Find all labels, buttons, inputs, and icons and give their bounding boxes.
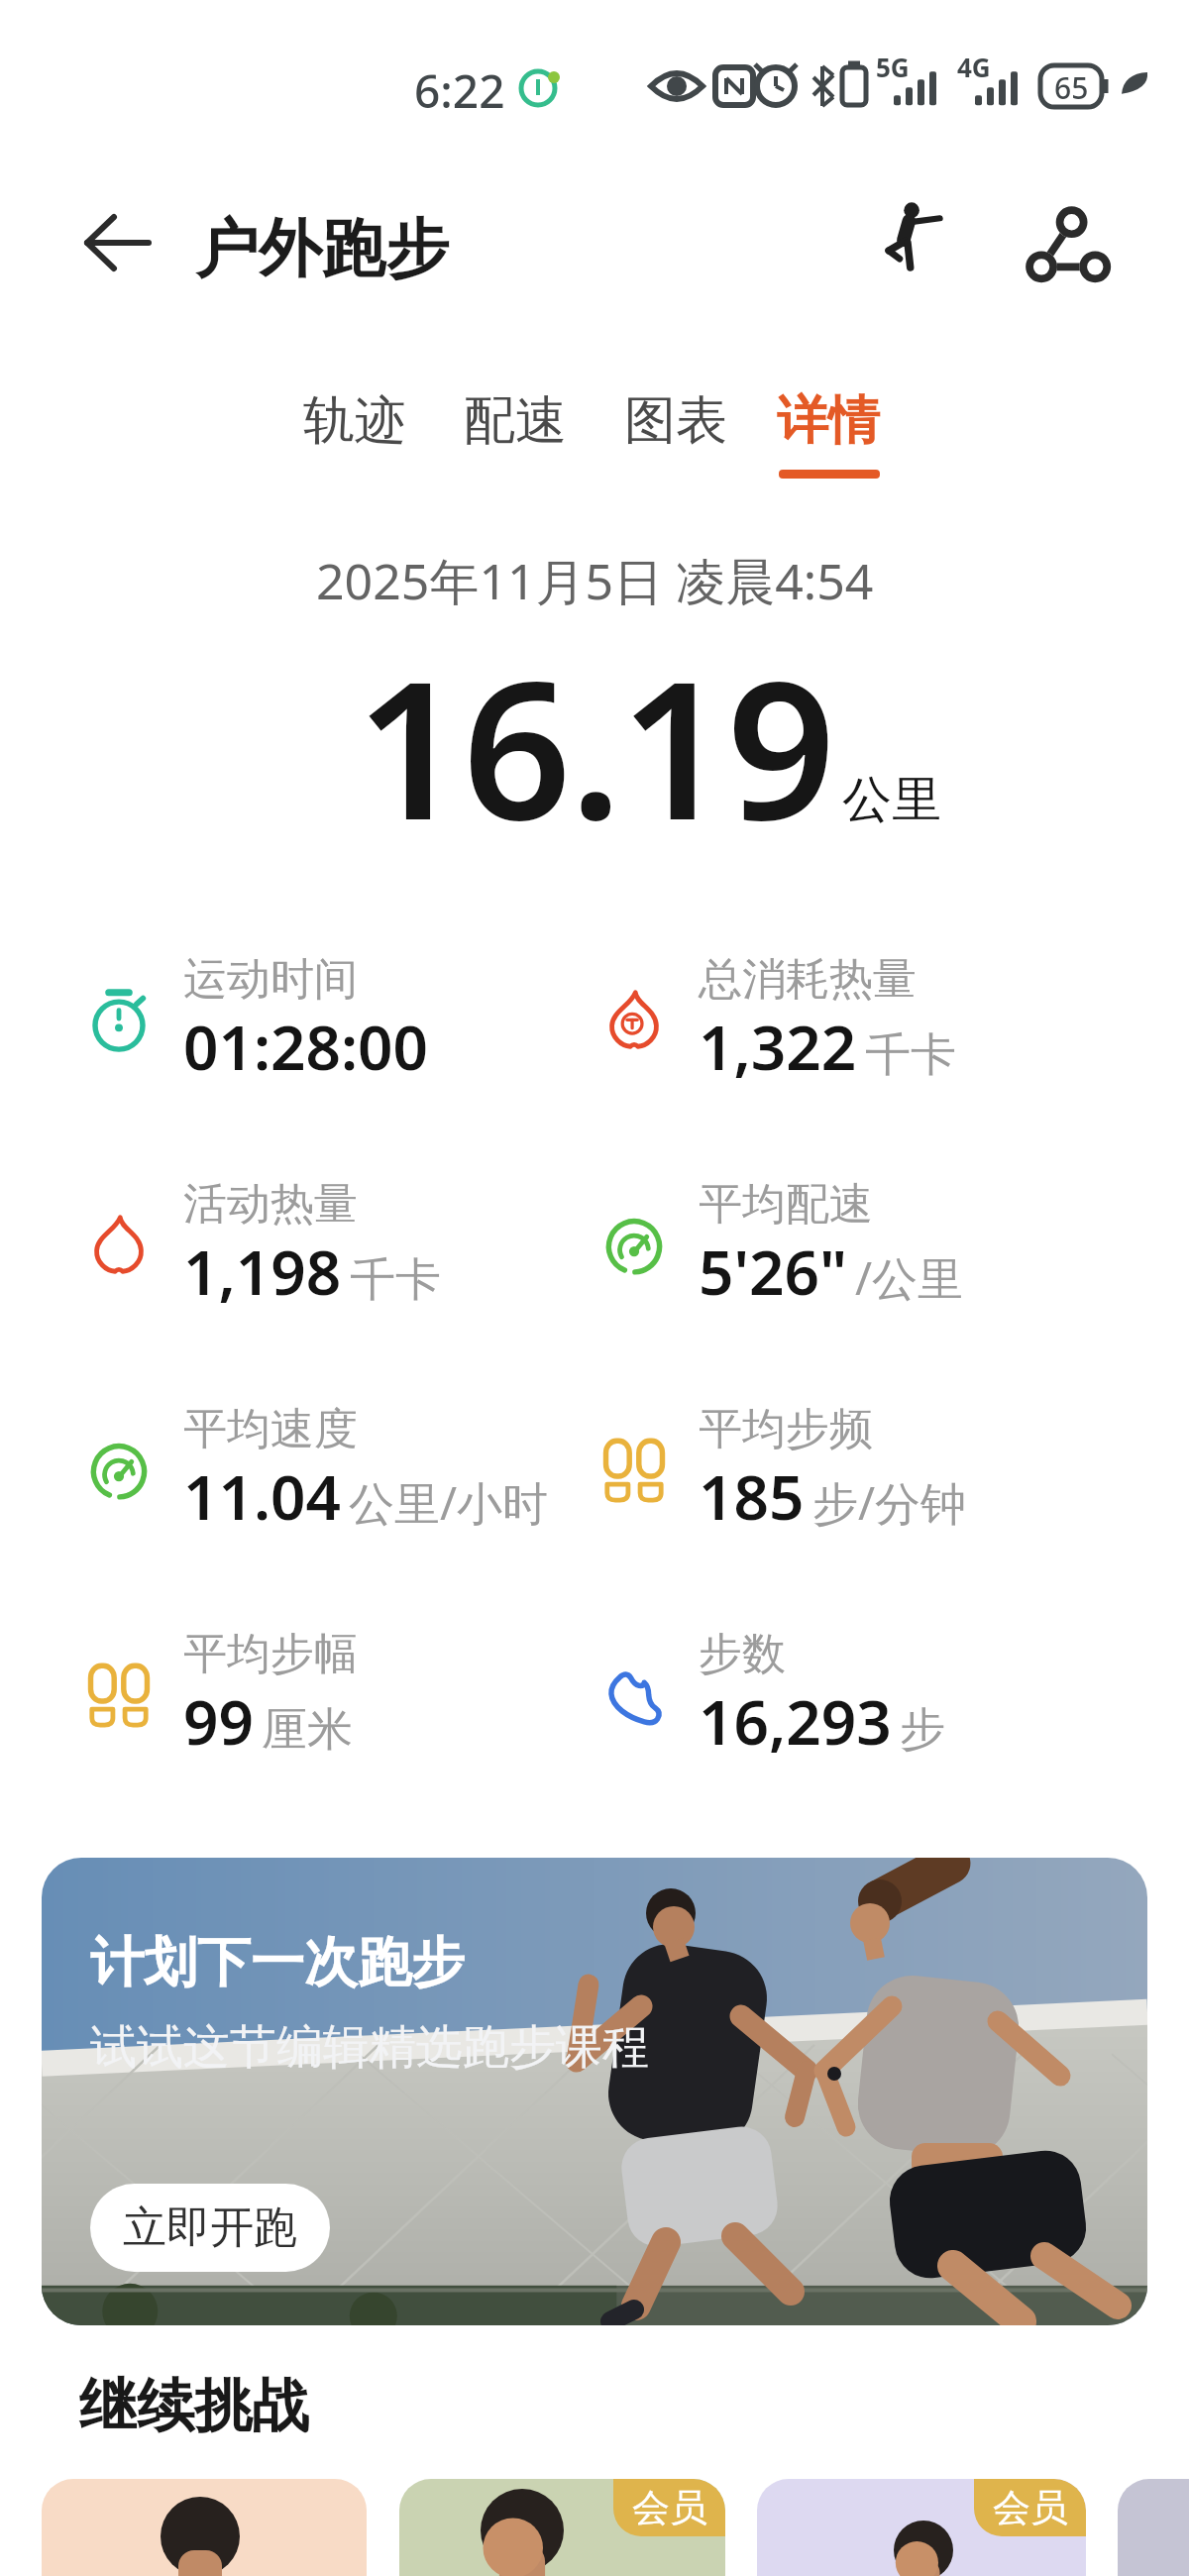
staticText: 计划下一次跑步: [90, 1929, 465, 1996]
staticText: 1,198: [183, 1230, 342, 1313]
staticText: 99: [183, 1679, 254, 1763]
staticText: 公里/小时: [349, 1471, 549, 1534]
staticText: 4G: [957, 50, 991, 84]
staticText: 总消耗热量: [699, 952, 917, 1007]
staticText: 运动时间: [183, 952, 358, 1007]
staticText: 185: [699, 1454, 805, 1538]
staticText: 试试这节编辑精选跑步课程: [90, 2018, 649, 2077]
button[interactable]: 轨迹: [303, 388, 410, 487]
button[interactable]: [69, 210, 164, 279]
staticText: 户外跑步: [195, 209, 449, 289]
staticText: 轨迹: [303, 388, 406, 454]
button[interactable]: [1118, 2479, 1189, 2576]
staticText: /公里: [855, 1246, 964, 1309]
button[interactable]: 立即开跑: [90, 2184, 330, 2272]
button[interactable]: [868, 196, 947, 285]
staticText: 65: [1054, 67, 1089, 108]
staticText: 继续挑战: [79, 2370, 309, 2442]
staticText: 图表: [624, 388, 727, 454]
staticText: 公里: [842, 769, 941, 831]
staticText: 16,293: [699, 1679, 892, 1763]
staticText: 配速: [464, 388, 567, 454]
staticText: 01:28:00: [183, 1005, 429, 1088]
staticText: 立即开跑: [123, 2200, 297, 2255]
staticText: 千卡: [350, 1251, 441, 1309]
staticText: 平均配速: [699, 1177, 873, 1232]
staticText: 会员: [632, 2484, 707, 2531]
button[interactable]: [1021, 202, 1106, 281]
staticText: 1,322: [699, 1005, 857, 1088]
staticText: 6:22: [414, 59, 505, 122]
staticText: 会员: [993, 2484, 1068, 2531]
staticText: 厘米: [262, 1701, 353, 1759]
staticText: 2025年11月5日 凌晨4:54: [316, 547, 874, 614]
staticText: 步/分钟: [812, 1471, 967, 1534]
staticText: 平均步幅: [183, 1627, 358, 1681]
button[interactable]: 会员: [757, 2479, 1086, 2576]
staticText: 步数: [699, 1627, 786, 1681]
staticText: 平均速度: [183, 1402, 358, 1456]
staticText: 千卡: [865, 1026, 956, 1084]
staticText: 活动热量: [183, 1177, 358, 1232]
button[interactable]: 会员: [399, 2479, 725, 2576]
button[interactable]: [42, 2479, 367, 2576]
button[interactable]: 详情: [777, 388, 884, 487]
staticText: 16.19: [356, 616, 834, 876]
staticText: 步: [900, 1701, 945, 1759]
staticText: 平均步频: [699, 1402, 873, 1456]
staticText: 5G: [876, 50, 910, 84]
button[interactable]: 图表: [624, 388, 731, 487]
staticText: 详情: [777, 388, 880, 454]
button[interactable]: 计划下一次跑步: [42, 1858, 1147, 2325]
staticText: 5'26": [699, 1230, 847, 1313]
button[interactable]: 配速: [464, 388, 571, 487]
staticText: 11.04: [183, 1454, 341, 1538]
